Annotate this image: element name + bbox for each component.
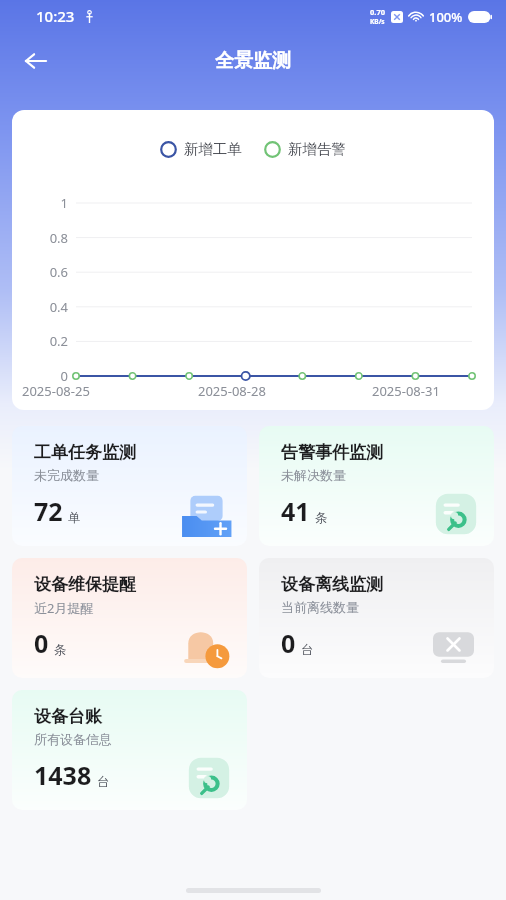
staticText: 条 [315,510,328,526]
button[interactable]: 设备台账 [12,690,247,810]
staticText: 设备台账 [34,706,102,727]
staticText: 近2月提醒 [34,599,94,617]
button[interactable]: Back [12,37,60,85]
staticText: 台 [97,774,110,790]
staticText: 0 [12,367,68,385]
staticText: KB/s [370,17,385,26]
staticText: 2025-08-28 [198,382,266,400]
staticText: 未完成数量 [34,467,99,483]
staticText: 条 [54,642,67,658]
staticText: 2025-08-31 [372,382,440,400]
staticText: 单 [68,510,81,526]
button[interactable]: 新增工单 [160,140,242,158]
staticText: 100% [429,8,463,26]
staticText: 72 [34,494,63,528]
staticText: 0.70 [370,7,385,17]
staticText: 告警事件监测 [281,442,383,463]
staticText: 新增告警 [288,140,346,158]
staticText: 当前离线数量 [281,599,359,615]
button[interactable]: 工单任务监测 [12,426,247,546]
staticText: 1438 [34,758,92,792]
staticText: 0.6 [12,263,68,281]
staticText: 未解决数量 [281,467,346,483]
staticText: 1 [12,194,68,212]
staticText: 设备离线监测 [281,574,383,595]
button[interactable]: 新增告警 [264,140,346,158]
button[interactable]: 设备离线监测 [259,558,494,678]
staticText: 台 [301,642,314,658]
staticText: 41 [281,494,310,528]
staticText: 全景监测 [215,49,291,73]
staticText: 0 [34,626,49,660]
button[interactable]: 设备维保提醒 [12,558,247,678]
staticText: 0.4 [12,298,68,316]
button[interactable]: 告警事件监测 [259,426,494,546]
staticText: 工单任务监测 [34,442,136,463]
staticText: 新增工单 [184,140,242,158]
staticText: 0.8 [12,229,68,247]
staticText: 设备维保提醒 [34,574,136,595]
staticText: 2025-08-25 [22,382,90,400]
staticText: 0.2 [12,332,68,350]
staticText: 10:23 [36,6,75,26]
staticText: 所有设备信息 [34,731,112,747]
staticText: 0 [281,626,296,660]
